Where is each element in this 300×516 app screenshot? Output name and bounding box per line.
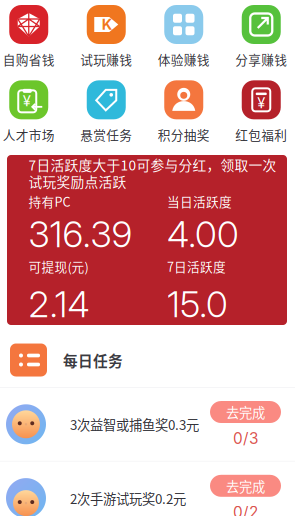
staticText: 316.39 — [28, 212, 132, 256]
button[interactable]: ¥ — [0, 80, 67, 144]
staticText: 积分抽奖 — [158, 125, 210, 144]
staticText: 悬赏任务 — [80, 125, 132, 144]
staticText: ¥ — [257, 94, 265, 112]
button[interactable]: 自购省钱 — [0, 5, 67, 68]
button[interactable]: ¥ — [222, 80, 300, 144]
staticText: 当日活跃度 — [167, 192, 232, 210]
staticText: 3次益智或捕鱼奖0.3元 — [70, 415, 199, 434]
staticText: 2.14 — [28, 282, 89, 326]
button[interactable]: K — [67, 5, 145, 68]
staticText: 体验赚钱 — [158, 50, 210, 68]
staticText: 可提现(元) — [28, 257, 88, 275]
staticText: 7日活跃度大于10可参与分红，领取一次试玩奖励点活跃 — [28, 156, 276, 190]
staticText: 0/3 — [233, 429, 258, 448]
button[interactable]: 3次益智或捕鱼奖0.3元 — [0, 388, 295, 461]
staticText: 每日任务 — [63, 349, 123, 371]
staticText: ¥ — [23, 92, 31, 110]
staticText: 分享赚钱 — [235, 50, 287, 68]
staticText: 15.0 — [167, 282, 228, 326]
staticText: 持有PC — [28, 192, 70, 210]
staticText: 4.00 — [167, 212, 239, 256]
staticText: 0/2 — [233, 503, 258, 516]
staticText: 7日活跃度 — [167, 257, 226, 275]
button[interactable]: 积分抽奖 — [145, 80, 222, 144]
staticText: 自购省钱 — [3, 50, 55, 68]
staticText: 试玩赚钱 — [80, 50, 132, 68]
button[interactable]: 悬赏任务 — [67, 80, 145, 144]
button[interactable]: 体验赚钱 — [145, 5, 222, 68]
button[interactable]: 分享赚钱 — [222, 5, 300, 68]
staticText: 去完成 — [226, 402, 265, 422]
staticText: 人才市场 — [3, 125, 55, 144]
staticText: 红包福利 — [235, 125, 287, 144]
staticText: K — [102, 16, 113, 33]
staticText: 2次手游试玩奖0.2元 — [70, 488, 186, 508]
staticText: 去完成 — [226, 476, 265, 495]
button[interactable]: 2次手游试玩奖0.2元 — [0, 462, 295, 516]
